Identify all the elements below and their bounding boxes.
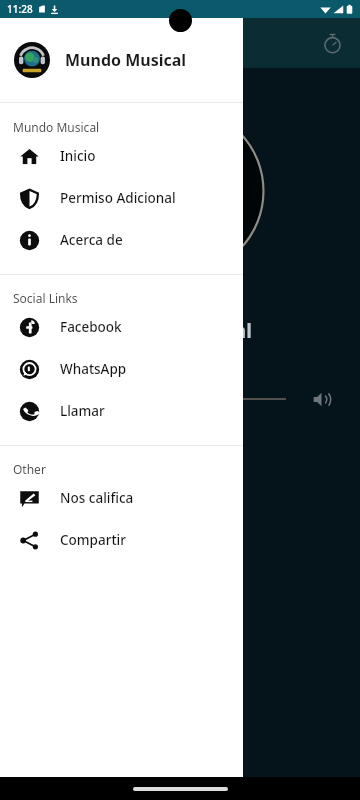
- button[interactable]: Llamar: [0, 390, 243, 432]
- staticText: Social Links: [13, 290, 78, 306]
- staticText: Mundo Musical: [65, 49, 187, 71]
- button[interactable]: Facebook: [0, 306, 243, 348]
- button[interactable]: Acerca de: [0, 219, 243, 261]
- staticText: 11:28: [7, 2, 33, 16]
- staticText: Acerca de: [60, 231, 123, 249]
- staticText: Facebook: [60, 318, 122, 336]
- button[interactable]: WhatsApp: [0, 348, 243, 390]
- staticText: Other: [13, 461, 46, 477]
- staticText: Mundo Musical: [108, 318, 252, 344]
- staticText: Compartir: [60, 531, 126, 549]
- button[interactable]: Mundo Musical: [0, 18, 243, 102]
- button[interactable]: Volume: [308, 386, 334, 412]
- staticText: WhatsApp: [60, 360, 127, 378]
- button[interactable]: Permiso Adicional: [0, 177, 243, 219]
- staticText: Inicio: [60, 147, 96, 165]
- button[interactable]: Inicio: [0, 135, 243, 177]
- button[interactable]: Compartir: [0, 519, 243, 561]
- staticText: Nos califica: [60, 489, 134, 507]
- staticText: Permiso Adicional: [60, 189, 176, 207]
- button[interactable]: Sleep timer: [315, 26, 349, 60]
- staticText: Mundo Musical: [13, 119, 100, 135]
- button[interactable]: Nos califica: [0, 477, 243, 519]
- staticText: Llamar: [60, 402, 105, 420]
